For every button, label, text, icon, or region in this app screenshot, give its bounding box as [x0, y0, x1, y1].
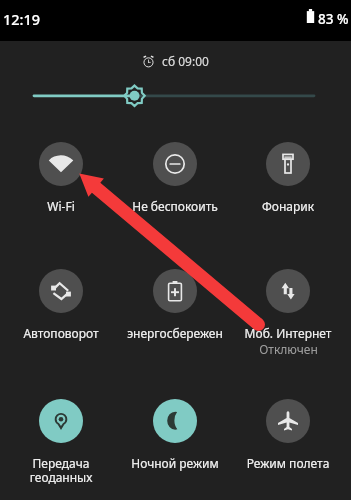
button[interactable]: сб 09:00: [136, 50, 215, 72]
button[interactable]: Передача геоданных: [6, 394, 116, 490]
button[interactable]: энергосбережен: [120, 264, 230, 345]
staticText: 12:19: [3, 9, 41, 29]
staticText: Режим полета: [233, 455, 343, 471]
staticText: Автоповорот: [6, 325, 116, 341]
button[interactable]: Wi-Fi: [6, 137, 116, 218]
staticText: Фонарик: [238, 198, 338, 214]
button[interactable]: Фонарик: [233, 137, 343, 218]
button[interactable]: Brightness: [0, 81, 351, 111]
button[interactable]: Моб. Интернет: [233, 264, 343, 361]
button[interactable]: Автоповорот: [6, 264, 116, 345]
staticText: Не беспокоить: [120, 198, 230, 214]
staticText: Wi-Fi: [11, 198, 111, 214]
staticText: сб 09:00: [162, 53, 209, 69]
staticText: Ночной режим: [120, 455, 230, 471]
button[interactable]: Ночной режим: [120, 394, 230, 475]
staticText: 83 %: [318, 10, 349, 28]
button[interactable]: Не беспокоить: [120, 137, 230, 218]
staticText: энергосбережен: [120, 325, 230, 341]
button[interactable]: Режим полета: [233, 394, 343, 475]
staticText: Отключен: [259, 341, 318, 357]
staticText: Моб. Интернет: [233, 325, 343, 341]
staticText: Передача геоданных: [22, 455, 100, 486]
